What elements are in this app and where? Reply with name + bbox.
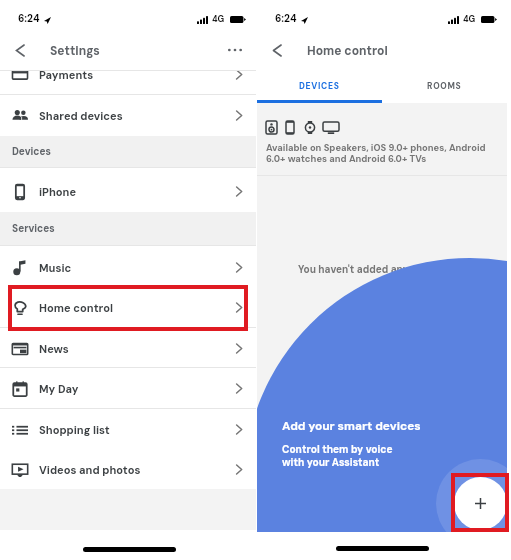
button[interactable]: Videos and photos xyxy=(0,449,256,489)
staticText: 4G xyxy=(212,14,225,25)
staticText: ROOMS xyxy=(427,81,462,92)
staticText: Shared devices xyxy=(39,109,123,123)
staticText: Home control xyxy=(307,43,388,59)
staticText: 6:24 xyxy=(275,12,297,25)
staticText: Music xyxy=(39,261,72,275)
button[interactable]: My Day xyxy=(0,368,256,409)
button[interactable]: More options xyxy=(221,36,249,64)
button[interactable]: Add device xyxy=(454,477,507,530)
staticText: Settings xyxy=(50,43,100,59)
button[interactable]: iPhone xyxy=(0,171,256,212)
staticText: 6:24 xyxy=(18,12,40,25)
staticText: Available on Speakers, iOS 9.0+ phones, … xyxy=(266,142,486,165)
button[interactable]: ROOMS xyxy=(382,70,507,103)
staticText: Shopping list xyxy=(39,423,110,437)
staticText: 4G xyxy=(463,14,476,25)
button[interactable]: Back xyxy=(263,36,291,64)
button[interactable]: Music xyxy=(0,247,256,288)
staticText: DEVICES xyxy=(299,81,340,92)
staticText: iPhone xyxy=(39,185,77,199)
staticText: Home control xyxy=(39,301,114,315)
staticText: You haven't added any devices xyxy=(298,263,450,276)
staticText: Services xyxy=(12,222,55,235)
button[interactable]: Payments xyxy=(0,71,256,95)
button[interactable]: Shared devices xyxy=(0,95,256,136)
staticText: Devices xyxy=(12,145,51,158)
button[interactable]: News xyxy=(0,328,256,369)
staticText: My Day xyxy=(39,382,79,396)
staticText: Payments xyxy=(39,71,94,82)
staticText: Videos and photos xyxy=(39,463,141,477)
button[interactable]: DEVICES xyxy=(257,70,382,103)
staticText: News xyxy=(39,342,69,356)
staticText: Control them by voice with your Assistan… xyxy=(282,443,393,470)
button[interactable]: Shopping list xyxy=(0,409,256,450)
button[interactable]: Back xyxy=(6,36,34,64)
button[interactable]: Home control xyxy=(0,287,256,328)
staticText: Add your smart devices xyxy=(282,418,421,433)
